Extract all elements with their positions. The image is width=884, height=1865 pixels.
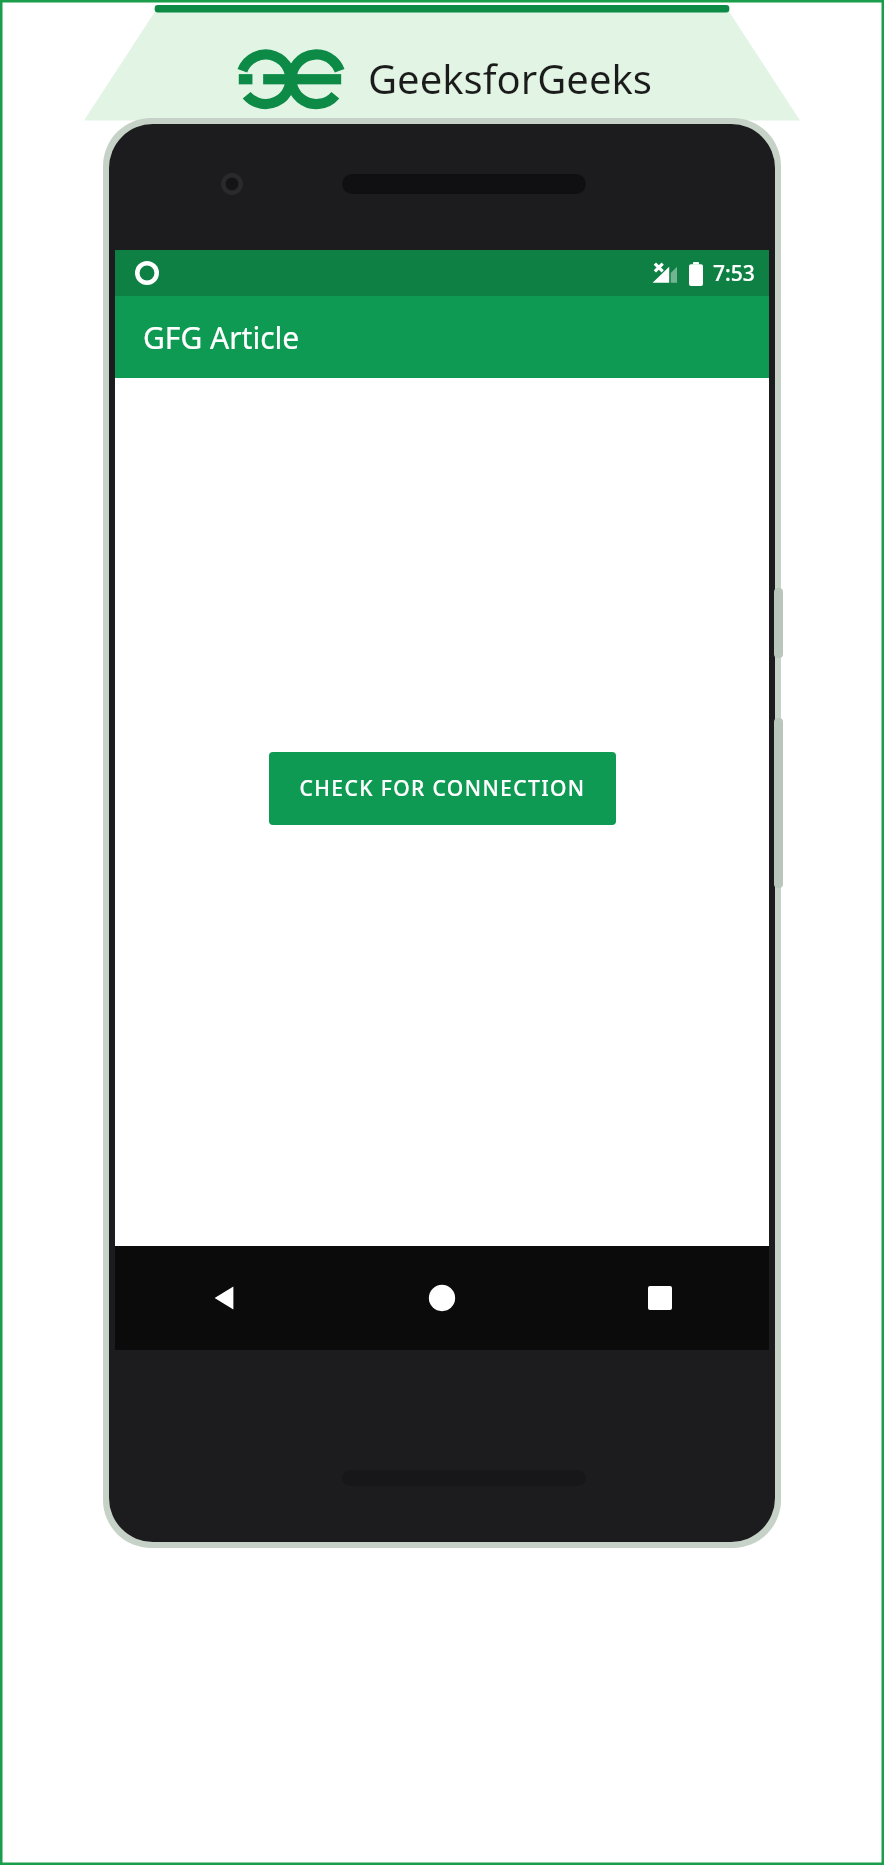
staticText: CHECK FOR CONNECTION [299, 774, 586, 803]
button[interactable]: Back [115, 1246, 333, 1350]
staticText: 7:53 [713, 259, 755, 288]
button[interactable]: CHECK FOR CONNECTION [269, 752, 616, 825]
button[interactable]: Home [333, 1246, 551, 1350]
staticText: GFG Article [143, 317, 300, 358]
button[interactable]: Recent apps [551, 1246, 769, 1350]
staticText: GeeksforGeeks [368, 51, 652, 105]
